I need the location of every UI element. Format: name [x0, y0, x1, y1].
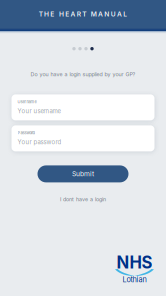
staticText: Lothian: [122, 275, 146, 284]
button[interactable]: Submit: [37, 165, 128, 182]
staticText: THE HEART MANUAL: [39, 10, 127, 18]
staticText: NHS: [116, 252, 152, 273]
staticText: Do you have a login supplied by your GP?: [30, 71, 135, 78]
button[interactable]: I dont have a login: [60, 196, 106, 202]
staticText: Password: [17, 130, 34, 135]
button[interactable]: Username: [11, 94, 154, 120]
staticText: Your password: [17, 138, 61, 146]
staticText: Username: [17, 99, 36, 104]
staticText: Your username: [17, 107, 60, 115]
staticText: I dont have a login: [60, 196, 106, 203]
button[interactable]: Password: [11, 125, 154, 151]
staticText: Submit: [72, 170, 94, 178]
